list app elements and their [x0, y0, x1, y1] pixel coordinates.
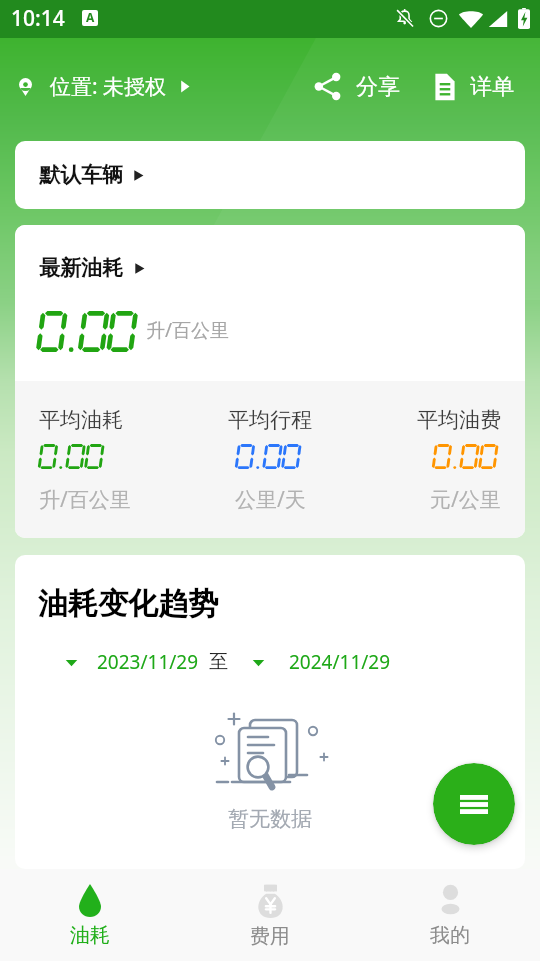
button[interactable]: 2024/11/29 [252, 649, 391, 675]
staticText: 升/百公里 [146, 317, 230, 343]
button[interactable]: 我的 [360, 869, 540, 948]
staticText: 费用 [250, 924, 290, 949]
staticText: 2024/11/29 [289, 649, 391, 675]
staticText: 分享 [356, 73, 400, 101]
staticText: 平均行程 [228, 407, 312, 433]
button[interactable]: 位置: 未授权 [13, 64, 196, 109]
staticText: 平均油费 [417, 407, 501, 433]
staticText: 位置: 未授权 [50, 72, 167, 101]
staticText: 公里/天 [235, 485, 306, 514]
button[interactable]: 默认车辆 [15, 141, 525, 209]
staticText: 2023/11/29 [97, 649, 199, 675]
button[interactable]: 分享 [308, 64, 405, 109]
staticText: A [86, 10, 95, 25]
button[interactable]: Menu [433, 763, 515, 845]
staticText: 详单 [470, 73, 514, 101]
staticText: 升/百公里 [39, 485, 131, 514]
staticText: 10:14 [11, 4, 65, 33]
staticText: 最新油耗 [39, 255, 123, 281]
staticText: 暂无数据 [228, 806, 312, 832]
button[interactable]: 2023/11/29 [65, 649, 199, 675]
staticText: 油耗 [70, 923, 110, 948]
staticText: 我的 [430, 923, 470, 948]
button[interactable]: 费用 [180, 869, 360, 949]
staticText: 默认车辆 [39, 162, 123, 188]
staticText: 油耗变化趋势 [38, 585, 218, 623]
button[interactable]: 详单 [428, 65, 519, 109]
button[interactable]: 油耗 [0, 869, 180, 948]
button[interactable]: 最新油耗 [39, 255, 145, 281]
staticText: 平均油耗 [39, 407, 123, 433]
staticText: 至 [209, 650, 228, 674]
staticText: 元/公里 [430, 485, 501, 514]
